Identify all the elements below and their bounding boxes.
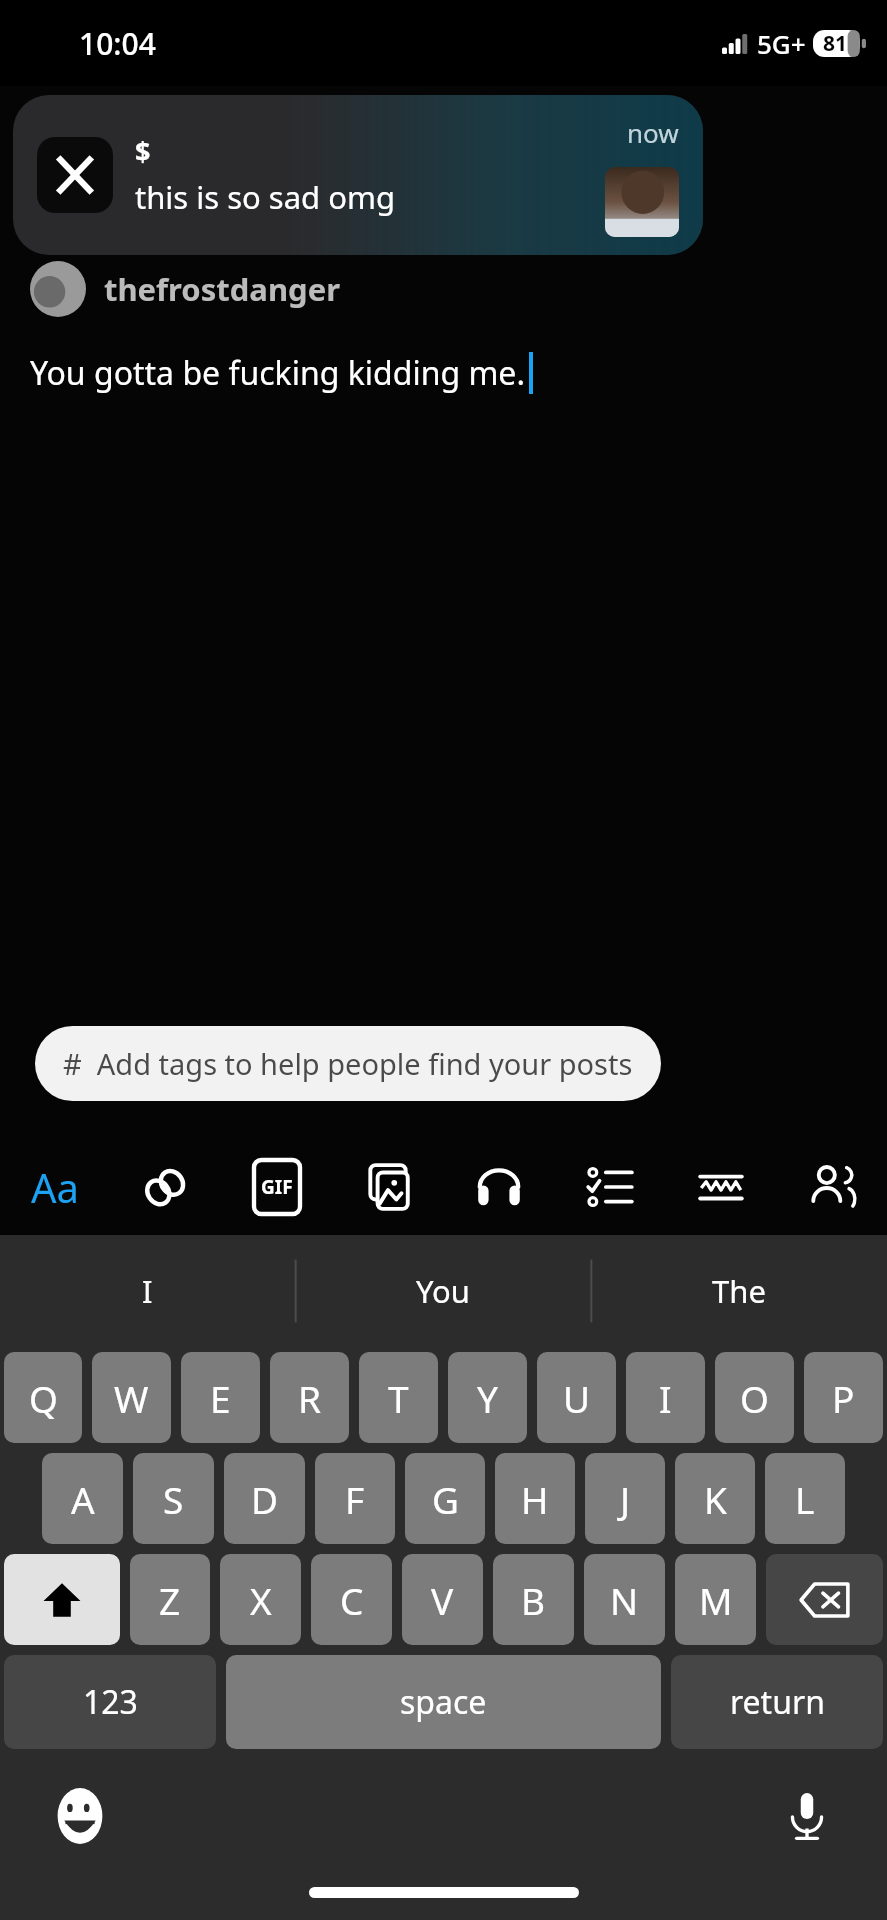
- button[interactable]: O: [715, 1352, 794, 1443]
- staticText: return: [730, 1680, 825, 1724]
- staticText: this is so sad omg: [135, 176, 395, 218]
- staticText: 81: [823, 29, 848, 58]
- button[interactable]: F: [315, 1453, 395, 1544]
- staticText: R: [298, 1373, 322, 1423]
- staticText: W: [114, 1373, 149, 1423]
- staticText: N: [610, 1575, 639, 1625]
- button[interactable]: The: [591, 1235, 887, 1347]
- button[interactable]: # Add tags to help people find your post…: [35, 1026, 661, 1101]
- button[interactable]: H: [495, 1453, 575, 1544]
- button[interactable]: L: [765, 1453, 845, 1544]
- staticText: V: [431, 1575, 454, 1625]
- button[interactable]: Draw: [665, 1139, 776, 1235]
- button[interactable]: G: [405, 1453, 485, 1544]
- button[interactable]: R: [270, 1352, 349, 1443]
- staticText: The: [712, 1270, 766, 1312]
- button[interactable]: 123: [4, 1655, 216, 1749]
- staticText: I: [142, 1270, 153, 1312]
- button[interactable]: space: [226, 1655, 661, 1749]
- button[interactable]: Photos: [332, 1139, 443, 1235]
- staticText: S: [163, 1474, 184, 1524]
- button[interactable]: Y: [448, 1352, 527, 1443]
- button[interactable]: Q: [4, 1352, 82, 1443]
- staticText: 123: [83, 1680, 138, 1724]
- button[interactable]: $: [13, 95, 703, 255]
- button[interactable]: I: [626, 1352, 705, 1443]
- button[interactable]: A: [42, 1453, 123, 1544]
- button[interactable]: Audio: [443, 1139, 554, 1235]
- button[interactable]: You: [295, 1235, 591, 1347]
- staticText: J: [620, 1474, 631, 1524]
- button[interactable]: U: [537, 1352, 616, 1443]
- staticText: P: [832, 1373, 855, 1423]
- staticText: # Add tags to help people find your post…: [63, 1044, 633, 1083]
- button[interactable]: X: [220, 1554, 301, 1645]
- staticText: O: [740, 1373, 769, 1423]
- staticText: 10:04: [79, 23, 156, 64]
- staticText: Q: [29, 1373, 58, 1423]
- button[interactable]: I: [0, 1235, 295, 1347]
- button[interactable]: E: [181, 1352, 260, 1443]
- button[interactable]: Link: [110, 1139, 221, 1235]
- staticText: T: [388, 1373, 409, 1423]
- button[interactable]: GIF: [221, 1139, 332, 1235]
- button[interactable]: K: [675, 1453, 755, 1544]
- staticText: You: [416, 1270, 470, 1312]
- staticText: U: [563, 1373, 591, 1423]
- staticText: Y: [477, 1373, 498, 1423]
- staticText: X: [250, 1575, 272, 1625]
- button[interactable]: Z: [130, 1554, 210, 1645]
- staticText: 5G+: [757, 26, 806, 61]
- button[interactable]: J: [585, 1453, 665, 1544]
- button[interactable]: Text format: [0, 1139, 110, 1235]
- staticText: G: [432, 1474, 459, 1524]
- staticText: now: [627, 115, 679, 150]
- staticText: space: [400, 1680, 487, 1724]
- staticText: H: [521, 1474, 549, 1524]
- staticText: thefrostdanger: [104, 268, 341, 310]
- staticText: A: [71, 1474, 95, 1524]
- button[interactable]: Mention people: [776, 1139, 887, 1235]
- button[interactable]: P: [804, 1352, 883, 1443]
- button[interactable]: Poll: [554, 1139, 665, 1235]
- staticText: GIF: [261, 1174, 293, 1200]
- button[interactable]: M: [675, 1554, 756, 1645]
- staticText: You gotta be fucking kidding me.: [30, 351, 525, 395]
- staticText: M: [699, 1575, 733, 1625]
- button[interactable]: D: [224, 1453, 305, 1544]
- staticText: E: [210, 1373, 231, 1423]
- button[interactable]: W: [92, 1352, 171, 1443]
- staticText: K: [704, 1474, 727, 1524]
- button[interactable]: Dictation: [767, 1776, 847, 1856]
- button[interactable]: S: [133, 1453, 214, 1544]
- button[interactable]: Shift: [4, 1554, 120, 1645]
- staticText: C: [340, 1575, 364, 1625]
- staticText: I: [659, 1373, 672, 1423]
- staticText: D: [251, 1474, 279, 1524]
- button[interactable]: Backspace: [766, 1554, 883, 1645]
- button[interactable]: V: [402, 1554, 483, 1645]
- staticText: Aa: [31, 1160, 79, 1214]
- staticText: F: [345, 1474, 365, 1524]
- button[interactable]: T: [359, 1352, 438, 1443]
- button[interactable]: C: [311, 1554, 392, 1645]
- staticText: $: [135, 133, 151, 170]
- button[interactable]: return: [671, 1655, 883, 1749]
- staticText: Z: [159, 1575, 181, 1625]
- staticText: L: [795, 1474, 815, 1524]
- button[interactable]: N: [584, 1554, 665, 1645]
- button[interactable]: B: [493, 1554, 574, 1645]
- staticText: B: [521, 1575, 546, 1625]
- button[interactable]: Emoji: [40, 1776, 120, 1856]
